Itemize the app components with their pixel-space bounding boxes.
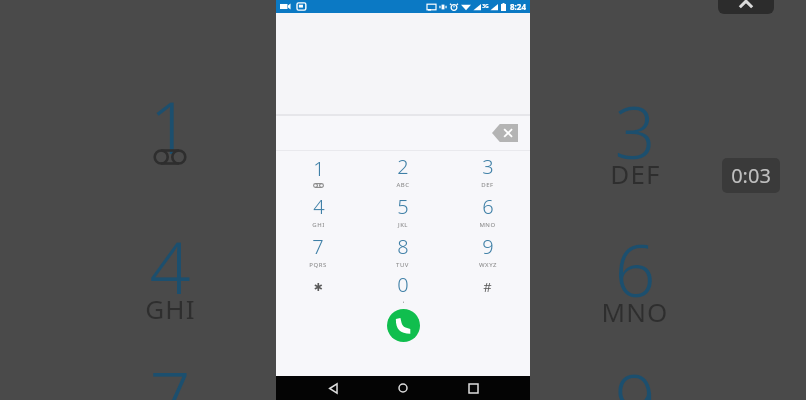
button[interactable]: 1: [276, 151, 360, 191]
staticText: 4: [149, 217, 191, 315]
staticText: GHI: [312, 221, 325, 229]
staticText: PQRS: [309, 261, 327, 269]
staticText: 3: [482, 153, 494, 180]
staticText: 1: [149, 77, 191, 175]
staticText: MNO: [479, 221, 496, 229]
staticText: DEF: [481, 181, 494, 189]
button[interactable]: 8: [360, 231, 445, 271]
staticText: 0: [397, 271, 409, 298]
staticText: 7: [312, 233, 324, 260]
staticText: #: [483, 278, 492, 296]
staticText: GHI: [145, 291, 196, 326]
staticText: 3G: [482, 3, 489, 10]
button[interactable]: Home: [390, 376, 416, 400]
staticText: DEF: [610, 156, 661, 191]
button[interactable]: 5: [360, 191, 445, 231]
button[interactable]: 6: [445, 191, 530, 231]
button[interactable]: Call: [387, 309, 420, 342]
staticText: +: [401, 298, 406, 303]
button[interactable]: 3: [445, 151, 530, 191]
staticText: 8: [397, 233, 409, 260]
button[interactable]: Close: [718, 0, 774, 14]
staticText: MNO: [601, 294, 669, 329]
button[interactable]: 0: [360, 271, 445, 303]
staticText: 6: [482, 193, 494, 220]
button[interactable]: 7: [276, 231, 360, 271]
staticText: 6: [614, 220, 656, 318]
staticText: 2: [397, 153, 409, 180]
staticText: TUV: [396, 261, 409, 269]
button[interactable]: Backspace: [492, 124, 518, 142]
staticText: WXYZ: [479, 261, 497, 269]
staticText: 5: [397, 193, 409, 220]
staticText: 7: [149, 347, 191, 400]
staticText: 9: [482, 233, 494, 260]
staticText: ✱: [313, 281, 323, 294]
staticText: 8:24: [510, 1, 526, 12]
button[interactable]: Recents: [460, 376, 486, 400]
staticText: 4: [313, 193, 325, 220]
staticText: 0:03: [731, 162, 771, 189]
button[interactable]: 4: [276, 191, 360, 231]
staticText: ABC: [396, 181, 410, 189]
button[interactable]: ✱: [276, 271, 360, 303]
button[interactable]: #: [445, 271, 530, 303]
staticText: 9: [614, 350, 656, 400]
button[interactable]: 2: [360, 151, 445, 191]
staticText: 1: [313, 155, 325, 182]
staticText: JKL: [398, 221, 408, 229]
button[interactable]: 9: [445, 231, 530, 271]
staticText: 3: [614, 82, 656, 180]
button[interactable]: Back: [320, 376, 346, 400]
